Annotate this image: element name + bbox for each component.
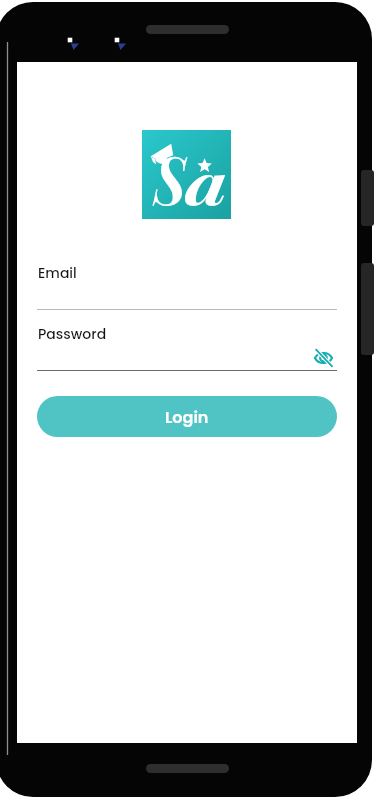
staticText: Email (38, 263, 77, 283)
staticText: Login (165, 406, 209, 428)
button[interactable]: Login (37, 396, 337, 437)
staticText: Password (38, 324, 107, 344)
button[interactable]: Show password (314, 349, 333, 367)
